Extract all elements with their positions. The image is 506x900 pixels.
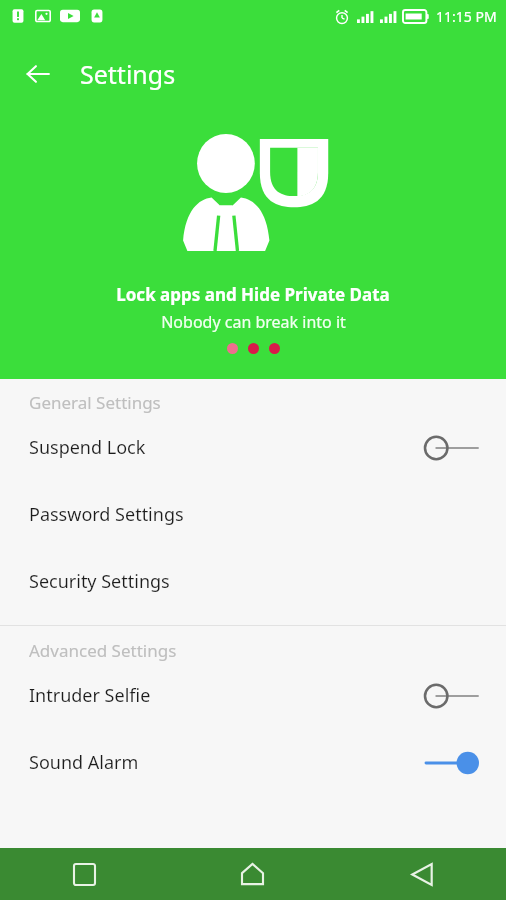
button[interactable]: Toggle off	[424, 679, 480, 713]
staticText: Suspend Lock	[29, 435, 146, 460]
button[interactable]: Suspend Lock	[0, 414, 506, 481]
button[interactable]: Recent apps	[0, 848, 168, 900]
button[interactable]: Back	[337, 848, 506, 900]
button[interactable]: Home	[168, 848, 337, 900]
staticText: Advanced Settings	[29, 639, 177, 662]
button[interactable]: Toggle off	[424, 431, 480, 465]
button[interactable]: Intruder Selfie	[0, 662, 506, 729]
button[interactable]: Toggle on	[424, 746, 480, 780]
staticText: Lock apps and Hide Private Data	[116, 283, 390, 306]
button[interactable]: Sound Alarm	[0, 729, 506, 796]
staticText: Nobody can break into it	[161, 311, 346, 333]
staticText: Security Settings	[29, 569, 170, 594]
staticText: Password Settings	[29, 502, 184, 527]
button[interactable]: Back	[14, 50, 62, 98]
staticText: Sound Alarm	[29, 750, 139, 775]
staticText: 11:15 PM	[436, 7, 497, 26]
button[interactable]: Security Settings	[0, 548, 506, 615]
button[interactable]: Password Settings	[0, 481, 506, 548]
staticText: Intruder Selfie	[29, 683, 151, 708]
staticText: Settings	[80, 57, 176, 91]
staticText: General Settings	[29, 391, 161, 414]
